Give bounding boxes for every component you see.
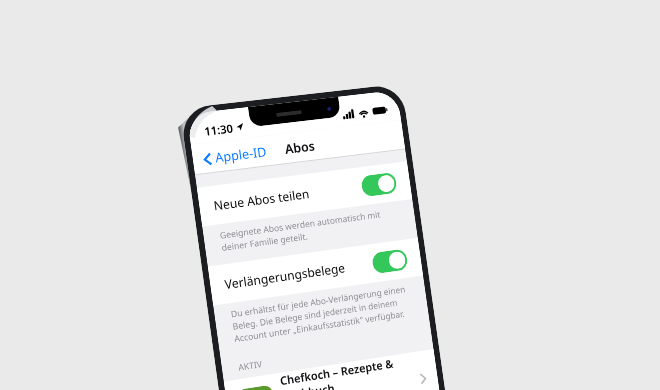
- button[interactable]: Verlängerungsbelege: [208, 238, 423, 305]
- button[interactable]: Neue Abos teilen: [197, 161, 412, 227]
- staticText: Geeignete Abos werden automatisch mit de…: [219, 206, 399, 254]
- staticText: AKTIV: [237, 358, 263, 374]
- staticText: Apple-ID: [214, 143, 268, 166]
- staticText: Chefkoch – Rezepte & Kochbuch: [279, 352, 421, 390]
- staticText: Verlängerungsbelege: [223, 255, 374, 292]
- other: Details: [419, 373, 427, 385]
- button[interactable]: Chefkoch – Rezepte & Kochbuch: [224, 349, 441, 390]
- button[interactable]: Toggle: [360, 172, 398, 197]
- button[interactable]: Toggle: [371, 248, 409, 274]
- staticText: Du erhältst für jede Abo-Verlängerung ei…: [230, 283, 412, 345]
- staticText: Werbefreiheit – Werbefreiheit im Abonnem…: [283, 384, 424, 390]
- staticText: 11:30: [203, 120, 235, 139]
- staticText: Neue Abos teilen: [212, 178, 363, 213]
- staticText: Abos: [284, 137, 317, 158]
- button[interactable]: Apple-ID: [199, 138, 272, 172]
